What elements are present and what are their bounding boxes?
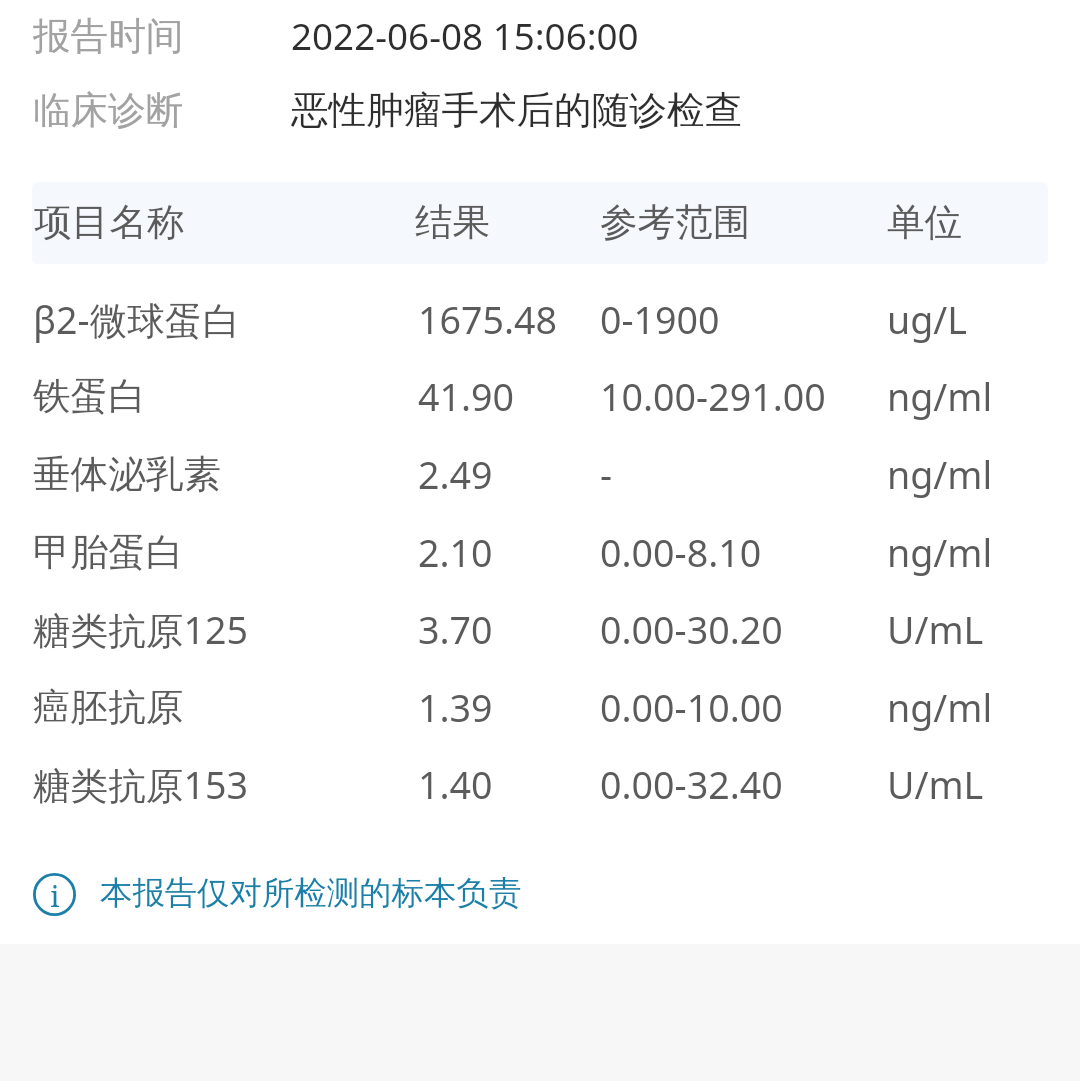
staticText: 结果 (415, 199, 491, 246)
staticText: U/mL (887, 759, 984, 810)
staticText: 2.49 (418, 449, 493, 500)
staticText: 3.70 (418, 604, 493, 655)
button[interactable]: β2-微球蛋白 (0, 280, 1080, 358)
staticText: 本报告仅对所检测的标本负责 (100, 873, 522, 914)
staticText: 糖类抗原125 (33, 604, 248, 655)
staticText: 铁蛋白 (33, 373, 146, 420)
staticText: 糖类抗原153 (33, 759, 248, 810)
button[interactable]: Information (0, 861, 1080, 927)
staticText: i (50, 876, 60, 915)
staticText: 41.90 (418, 371, 515, 422)
staticText: 临床诊断 (33, 87, 184, 134)
staticText: 2.10 (418, 527, 493, 578)
button[interactable]: 癌胚抗原 (0, 668, 1080, 746)
staticText: 1.40 (418, 759, 493, 810)
staticText: 0.00-32.40 (600, 759, 783, 810)
staticText: ng/ml (887, 371, 993, 422)
button[interactable]: 铁蛋白 (0, 357, 1080, 435)
staticText: 癌胚抗原 (33, 684, 184, 731)
staticText: 单位 (887, 199, 963, 246)
staticText: 10.00-291.00 (600, 371, 826, 422)
button[interactable]: 糖类抗原153 (0, 745, 1080, 823)
staticText: 0.00-30.20 (600, 604, 783, 655)
other: Information (33, 873, 76, 916)
staticText: 1675.48 (418, 294, 558, 345)
staticText: - (600, 449, 613, 500)
staticText: 0.00-8.10 (600, 527, 762, 578)
staticText: ng/ml (887, 682, 993, 733)
staticText: 项目名称 (34, 199, 185, 246)
staticText: 2022-06-08 15:06:00 (291, 11, 639, 61)
staticText: 甲胎蛋白 (33, 529, 184, 576)
staticText: ug/L (887, 294, 968, 345)
staticText: 0-1900 (600, 294, 720, 345)
button[interactable]: 甲胎蛋白 (0, 513, 1080, 591)
staticText: β2-微球蛋白 (33, 294, 241, 345)
button[interactable]: 糖类抗原125 (0, 590, 1080, 668)
staticText: 参考范围 (600, 199, 751, 246)
staticText: U/mL (887, 604, 984, 655)
staticText: 1.39 (418, 682, 493, 733)
staticText: ng/ml (887, 449, 993, 500)
staticText: 报告时间 (33, 13, 184, 60)
button[interactable]: 垂体泌乳素 (0, 435, 1080, 513)
staticText: 垂体泌乳素 (33, 451, 221, 498)
staticText: 0.00-10.00 (600, 682, 783, 733)
staticText: 恶性肿瘤手术后的随诊检查 (291, 87, 743, 134)
staticText: ng/ml (887, 527, 993, 578)
